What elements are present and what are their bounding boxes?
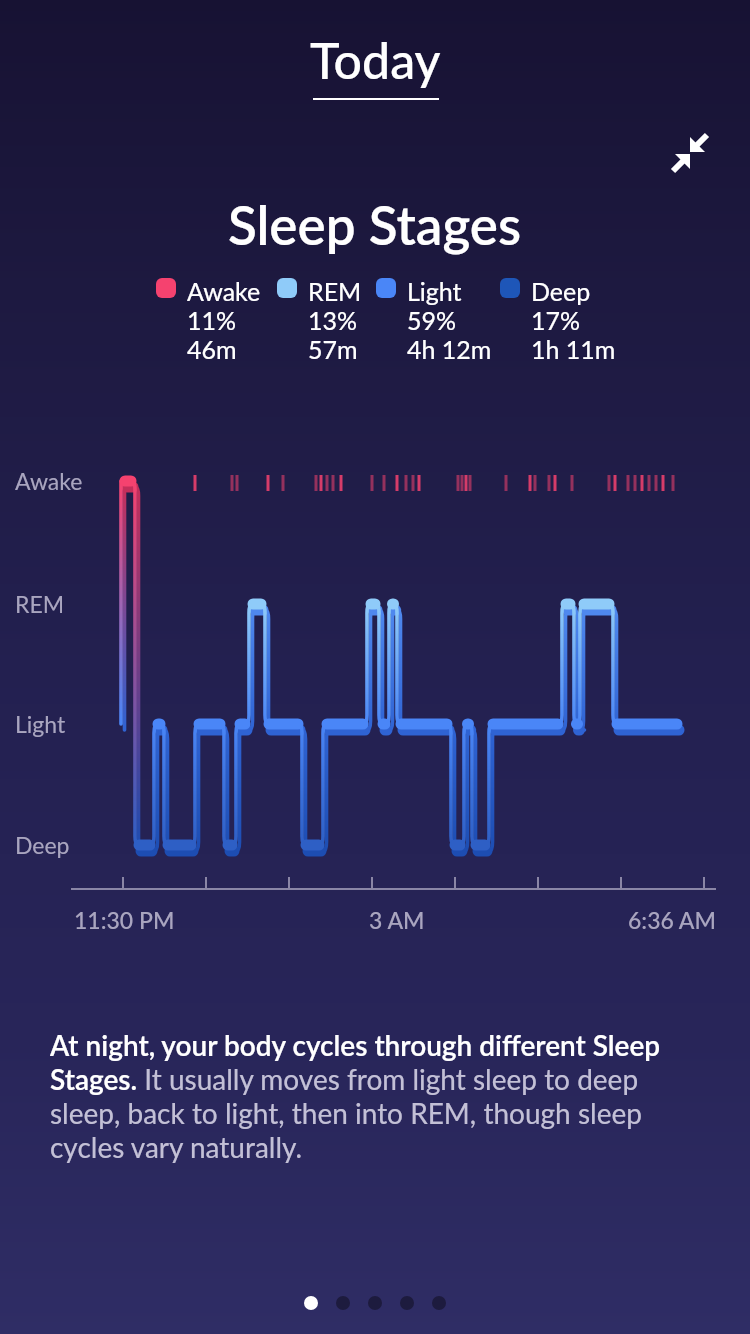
staticText: Deep xyxy=(531,276,591,305)
staticText: Deep xyxy=(15,831,70,859)
staticText: 3 AM xyxy=(369,906,425,934)
staticText: Stages. It usually moves from light slee… xyxy=(50,1062,639,1096)
staticText: sleep, back to light, then into REM, tho… xyxy=(50,1096,642,1130)
staticText: Light xyxy=(407,276,462,305)
staticText: 6:36 AM xyxy=(628,906,716,934)
staticText: Awake xyxy=(15,467,83,495)
button[interactable] xyxy=(666,127,714,175)
staticText: 17% xyxy=(531,305,581,334)
staticText: cycles vary naturally. xyxy=(50,1130,303,1164)
staticText: 59% xyxy=(407,305,457,334)
button[interactable] xyxy=(400,1296,414,1310)
staticText: At night, your body cycles through diffe… xyxy=(50,1028,661,1062)
staticText: 11% xyxy=(187,305,237,334)
staticText: 46m xyxy=(187,334,237,363)
button[interactable] xyxy=(336,1296,350,1310)
button[interactable] xyxy=(304,1296,318,1310)
staticText: REM xyxy=(308,276,362,305)
staticText: REM xyxy=(15,590,65,618)
staticText: Awake xyxy=(187,276,261,305)
staticText: 11:30 PM xyxy=(74,906,175,934)
staticText: Light xyxy=(15,710,66,738)
staticText: 1h 11m xyxy=(531,334,616,363)
staticText: Sleep Stages xyxy=(228,193,522,257)
button[interactable] xyxy=(432,1296,446,1310)
button[interactable] xyxy=(368,1296,382,1310)
staticText: Today xyxy=(310,30,441,90)
button[interactable]: Today xyxy=(310,30,441,100)
staticText: 57m xyxy=(308,334,358,363)
staticText: 13% xyxy=(308,305,358,334)
staticText: 4h 12m xyxy=(407,334,492,363)
